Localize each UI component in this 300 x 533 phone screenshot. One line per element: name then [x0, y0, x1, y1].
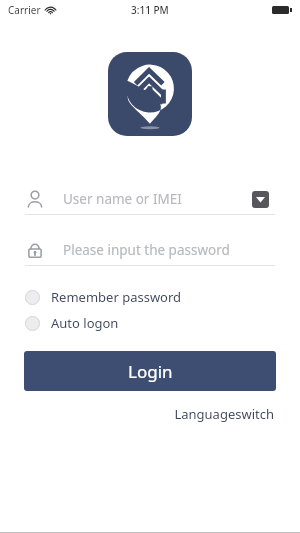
- other: Password: [25, 240, 45, 260]
- staticText: Auto logon: [51, 314, 119, 332]
- button[interactable]: Password: [25, 235, 275, 265]
- button[interactable]: Languageswitch: [172, 401, 276, 427]
- button[interactable]: Remember password: [25, 284, 275, 310]
- staticText: Carrier: [8, 3, 41, 17]
- staticText: Please input the password: [63, 241, 275, 259]
- button[interactable]: Auto logon: [25, 310, 275, 336]
- staticText: User name or IMEI: [63, 190, 245, 208]
- staticText: Languageswitch: [174, 405, 274, 423]
- staticText: Login: [128, 360, 173, 383]
- staticText: 3:11 PM: [131, 3, 169, 17]
- button[interactable]: Login: [24, 351, 276, 391]
- button[interactable]: User: [25, 184, 275, 214]
- staticText: Remember password: [51, 288, 182, 306]
- button[interactable]: Show saved accounts: [245, 184, 275, 214]
- other: User: [25, 189, 45, 209]
